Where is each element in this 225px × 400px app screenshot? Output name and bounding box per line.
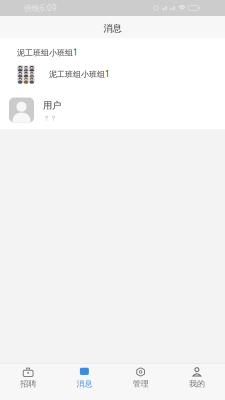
button[interactable]: 招聘 — [0, 364, 56, 400]
staticText: 泥工班组小班组1 — [17, 47, 78, 58]
button[interactable]: 消息 — [56, 364, 112, 400]
staticText: 消息 — [103, 23, 121, 34]
button[interactable]: 用户 — [0, 87, 225, 129]
button[interactable]: 我的 — [169, 364, 225, 400]
staticText: 我的 — [189, 379, 205, 389]
staticText: 管理 — [133, 379, 149, 389]
staticText: ？？ — [43, 114, 57, 122]
staticText: 消息 — [76, 379, 92, 389]
button[interactable]: 泥工班组小班组1 — [0, 38, 225, 61]
button[interactable]: 泥工班组小班组1 — [0, 61, 225, 87]
staticText: 用户 — [43, 100, 61, 111]
staticText: 泥工班组小班组1 — [49, 69, 110, 79]
button[interactable]: 管理 — [112, 364, 169, 400]
staticText: 傍晚6:09 — [24, 3, 57, 13]
staticText: 招聘 — [20, 379, 36, 389]
